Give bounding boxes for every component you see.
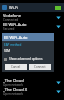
staticText: Connect <box>34 65 46 69</box>
button[interactable]: Show advanced options <box>4 57 43 61</box>
button[interactable]: _The Cloud X <box>0 87 64 96</box>
staticText: Open network <box>3 83 24 87</box>
staticText: _The Cloud X <box>3 87 28 92</box>
button[interactable]: Cancel <box>5 64 27 70</box>
staticText: Vodafone <box>3 13 21 18</box>
staticText: Open network <box>3 92 24 96</box>
button[interactable]: Settings <box>2 5 7 10</box>
button[interactable]: Vodafone <box>0 13 64 22</box>
staticText: EE WiFi-Auto <box>4 35 28 40</box>
staticText: EE WiFi-Auto <box>3 22 27 27</box>
staticText: Connected <box>3 18 19 22</box>
staticText: Show advanced options <box>9 57 43 61</box>
button[interactable]: EE WiFi-Auto <box>0 22 64 31</box>
button[interactable]: Connect <box>29 64 51 70</box>
staticText: Secured <box>3 27 15 31</box>
staticText: Cancel <box>11 65 21 69</box>
button[interactable]: _The Cloud <box>0 78 64 87</box>
staticText: SIM <box>4 48 11 53</box>
staticText: EAP method <box>4 43 22 47</box>
staticText: _The Cloud <box>3 78 24 83</box>
staticText: Wi-Fi <box>9 5 19 10</box>
